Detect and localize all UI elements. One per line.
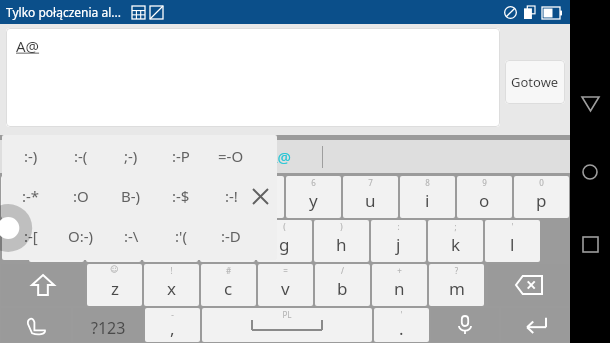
button[interactable]: A@ xyxy=(268,147,338,167)
button[interactable]: A@ xyxy=(6,28,500,127)
button[interactable]: :-P xyxy=(155,139,207,173)
button[interactable]: :-[ xyxy=(5,219,57,253)
button[interactable]: :-D xyxy=(205,219,257,253)
staticText: 7 xyxy=(343,177,398,188)
button[interactable]: # xyxy=(201,264,256,306)
staticText: 0 xyxy=(514,177,569,188)
button[interactable]: :-$ xyxy=(155,179,207,213)
button[interactable]: / xyxy=(315,264,370,306)
button[interactable]: Gotowe xyxy=(505,60,565,104)
button[interactable]: 3 xyxy=(115,176,170,218)
staticText: 8 xyxy=(400,177,455,188)
staticText: 6 xyxy=(286,177,341,188)
button[interactable]: ? xyxy=(429,264,484,306)
button[interactable]: ;-) xyxy=(105,139,157,173)
staticText: ;-) xyxy=(124,146,138,166)
button[interactable]: O:-) xyxy=(55,219,107,253)
button[interactable]: =-O xyxy=(205,139,257,173)
button[interactable]: Shift xyxy=(1,264,85,306)
staticText: :-D xyxy=(221,226,241,246)
button[interactable]: :-) xyxy=(5,139,57,173)
staticText: Tylko połączenia al... xyxy=(6,4,121,20)
button[interactable]: :-* xyxy=(5,179,57,213)
staticText: ? xyxy=(429,265,484,276)
button[interactable]: Enter xyxy=(501,308,569,342)
button[interactable]: 1 xyxy=(1,176,56,218)
button[interactable]: 9 xyxy=(457,176,512,218)
button[interactable]: + xyxy=(372,264,427,306)
staticText: : xyxy=(371,221,426,232)
button[interactable]: ! xyxy=(144,264,199,306)
button[interactable]: ; xyxy=(428,220,483,262)
staticText: O:-) xyxy=(68,226,94,246)
button[interactable]: 0 xyxy=(514,176,569,218)
staticText: k xyxy=(451,233,461,256)
staticText: :-P xyxy=(172,146,190,166)
staticText: v xyxy=(281,277,290,300)
staticText: ! xyxy=(144,265,199,276)
button[interactable]: B-) xyxy=(105,179,157,213)
staticText: :-[ xyxy=(24,226,38,246)
staticText: + xyxy=(372,265,427,276)
button[interactable]: 4 xyxy=(172,176,227,218)
button[interactable]: ?123 xyxy=(73,308,143,342)
button[interactable]: :-\ xyxy=(105,219,157,253)
staticText: ☺ xyxy=(87,265,142,274)
button[interactable]: " xyxy=(143,220,198,262)
button[interactable]: 8 xyxy=(400,176,455,218)
staticText: m xyxy=(449,277,465,300)
button[interactable]: 6 xyxy=(286,176,341,218)
staticText: b xyxy=(337,277,348,300)
button[interactable]: :-( xyxy=(55,139,107,173)
staticText: n xyxy=(394,277,405,300)
staticText: :-\ xyxy=(124,226,139,246)
button[interactable]: 7 xyxy=(343,176,398,218)
button[interactable]: - xyxy=(145,308,200,342)
button[interactable]: Emoji keyboard xyxy=(1,308,71,342)
button[interactable]: Close xyxy=(245,179,275,213)
button[interactable]: Space xyxy=(202,308,372,342)
button[interactable]: :'( xyxy=(155,219,207,253)
button[interactable]: Home xyxy=(570,152,610,192)
button[interactable]: ( xyxy=(257,220,312,262)
staticText: # xyxy=(201,265,256,276)
button[interactable]: ☺ xyxy=(87,264,142,306)
staticText: :O xyxy=(73,186,89,206)
staticText: :-* xyxy=(22,186,40,206)
button[interactable]: @ xyxy=(29,220,84,262)
button[interactable]: :-! xyxy=(205,179,257,213)
button[interactable]: 5 xyxy=(229,176,284,218)
button[interactable]: :O xyxy=(55,179,107,213)
staticText: p xyxy=(536,189,547,212)
button[interactable]: Recent apps xyxy=(570,224,610,264)
button[interactable]: Backspace xyxy=(488,264,569,306)
button[interactable]: ) xyxy=(314,220,369,262)
button[interactable]: 2 xyxy=(58,176,113,218)
staticText: l xyxy=(510,233,515,256)
button[interactable]: Voice input xyxy=(431,308,499,342)
staticText: :'( xyxy=(175,226,187,246)
button[interactable]: ' xyxy=(374,308,429,342)
staticText: f xyxy=(225,233,231,256)
staticText: ; xyxy=(428,221,483,232)
button[interactable]: : xyxy=(371,220,426,262)
button[interactable]: * xyxy=(86,220,141,262)
button[interactable]: = xyxy=(258,264,313,306)
staticText: w xyxy=(79,189,93,212)
button[interactable]: ' xyxy=(200,220,255,262)
button[interactable]: Back xyxy=(570,84,610,124)
staticText: A@ xyxy=(16,36,40,56)
button[interactable]: ' xyxy=(485,220,540,262)
